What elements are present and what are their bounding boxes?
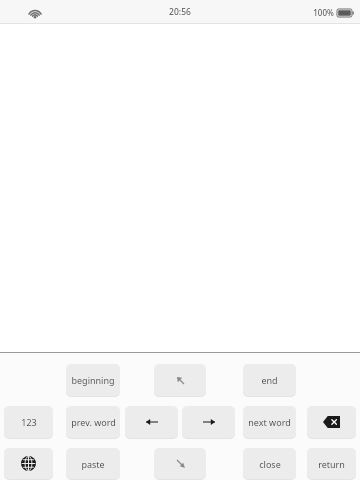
button[interactable]: Move cursor left — [125, 406, 178, 438]
button[interactable]: Backspace — [307, 406, 356, 438]
staticText: return — [318, 458, 345, 470]
staticText: paste — [81, 458, 105, 470]
staticText: 100% — [313, 7, 334, 18]
button[interactable]: end — [243, 364, 296, 396]
staticText: end — [261, 374, 278, 386]
button[interactable]: Move cursor up — [154, 364, 206, 396]
staticText: close — [259, 458, 281, 470]
staticText: 20:56 — [169, 6, 191, 18]
button[interactable]: paste — [66, 448, 120, 479]
other: Wi-Fi — [28, 7, 42, 18]
button[interactable]: prev. word — [66, 406, 120, 438]
button[interactable]: next word — [243, 406, 296, 438]
button[interactable]: 123 — [4, 406, 53, 438]
button[interactable]: Switch keyboard — [4, 448, 53, 479]
staticText: 123 — [21, 416, 37, 428]
staticText: next word — [248, 416, 291, 428]
button[interactable]: Move cursor down — [154, 448, 206, 479]
other: Battery full — [337, 9, 354, 17]
staticText: beginning — [71, 374, 115, 386]
button[interactable]: close — [243, 448, 296, 479]
button[interactable]: beginning — [66, 364, 120, 396]
button[interactable]: return — [307, 448, 356, 479]
button[interactable]: Move cursor right — [182, 406, 235, 438]
staticText: prev. word — [71, 416, 116, 428]
